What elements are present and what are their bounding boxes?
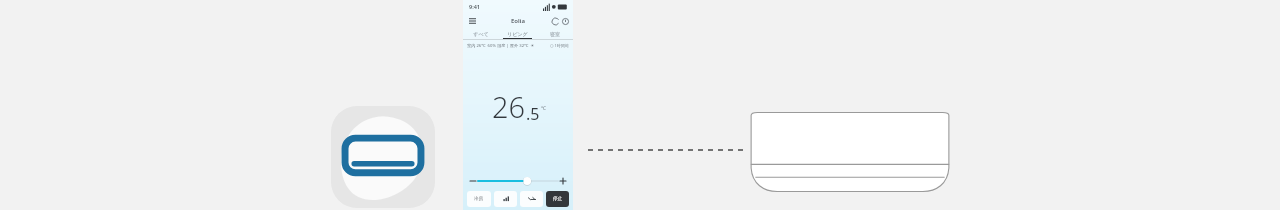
button[interactable]: リビング [499, 28, 536, 39]
staticText: 室内 26℃ 60% 湿度 | 屋外 32℃ ☀ [467, 43, 535, 49]
button[interactable]: 寝室 [536, 28, 573, 39]
button[interactable]: Refresh [550, 16, 560, 26]
staticText: 9:41 [469, 3, 480, 10]
button[interactable]: すべて [463, 28, 499, 39]
staticText: .5 [526, 103, 540, 125]
staticText: 寝室 [550, 31, 560, 37]
staticText: すべて [473, 31, 489, 37]
button[interactable]: Menu [467, 16, 477, 26]
button[interactable]: Increase temperature [558, 176, 568, 186]
staticText: ℃ [541, 105, 546, 112]
button[interactable]: Fan speed [494, 191, 517, 207]
button[interactable]: Help [560, 16, 570, 26]
button[interactable]: 冷房 [467, 191, 491, 207]
staticText: 26 [492, 87, 526, 126]
button[interactable] [478, 175, 558, 187]
staticText: 停止 [553, 196, 563, 202]
button[interactable]: Air conditioner app icon [331, 106, 435, 208]
staticText: 冷房 [474, 196, 484, 202]
staticText: ○ 1時間前 [550, 43, 569, 48]
button[interactable]: Air swing [520, 191, 543, 207]
button[interactable]: 停止 [546, 191, 569, 207]
staticText: リビング [507, 31, 528, 37]
staticText: Eolia [511, 17, 525, 25]
button[interactable]: Decrease temperature [468, 176, 478, 186]
